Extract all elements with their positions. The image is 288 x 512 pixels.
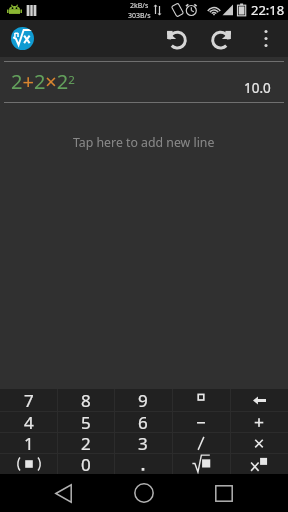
other: Decimal point xyxy=(134,455,152,473)
button[interactable]: 3 xyxy=(114,432,172,453)
other: Multiply xyxy=(250,434,268,452)
button[interactable]: Parentheses xyxy=(0,453,57,474)
button[interactable]: 0 xyxy=(57,453,114,474)
staticText: 303B/s xyxy=(128,11,151,21)
other: Power xyxy=(250,455,268,473)
button[interactable]: More options xyxy=(244,20,288,57)
button[interactable]: 7 xyxy=(0,389,57,411)
button[interactable]: Redo xyxy=(199,20,243,57)
button[interactable]: 9 xyxy=(114,389,172,411)
other: Divide xyxy=(192,434,210,452)
other: Square root xyxy=(192,454,210,473)
button[interactable]: Degree xyxy=(172,389,230,411)
button[interactable]: Calculator xyxy=(11,27,34,50)
staticText: Tap here to add new line xyxy=(73,134,215,151)
staticText: 3 xyxy=(138,432,148,453)
button[interactable]: Back xyxy=(23,474,103,512)
button[interactable]: Recent apps xyxy=(184,474,264,512)
staticText: 2+2×22 xyxy=(11,68,75,95)
staticText: 1 xyxy=(24,432,34,453)
other: Backspace xyxy=(253,395,266,406)
button[interactable]: 4 xyxy=(0,411,57,432)
button[interactable]: 8 xyxy=(57,389,114,411)
button[interactable]: Undo xyxy=(155,20,199,57)
button[interactable]: Square root xyxy=(172,453,230,474)
button[interactable]: Minus xyxy=(172,411,230,432)
staticText: 8 xyxy=(81,389,91,411)
button[interactable]: Backspace xyxy=(230,389,288,411)
staticText: 6 xyxy=(138,411,148,432)
button[interactable]: Decimal point xyxy=(114,453,172,474)
button[interactable]: Tap here to add new line xyxy=(0,103,288,181)
button[interactable]: 6 xyxy=(114,411,172,432)
button[interactable]: 2 xyxy=(57,432,114,453)
other: Minus xyxy=(192,413,210,431)
button[interactable]: Plus xyxy=(230,411,288,432)
staticText: 9 xyxy=(138,389,148,411)
staticText: 4 xyxy=(24,411,34,432)
staticText: 2 xyxy=(81,432,91,453)
staticText: 5 xyxy=(81,411,91,432)
button[interactable]: Multiply xyxy=(230,432,288,453)
button[interactable]: Home xyxy=(104,474,184,512)
button[interactable]: 2+2×22 xyxy=(0,62,288,102)
staticText: 7 xyxy=(24,389,34,411)
staticText: 2kB/s xyxy=(130,1,149,11)
button[interactable]: 1 xyxy=(0,432,57,453)
button[interactable]: 5 xyxy=(57,411,114,432)
other: Plus xyxy=(250,413,268,431)
staticText: 22:18 xyxy=(251,1,285,19)
other: Parentheses xyxy=(16,455,42,473)
button[interactable]: Power xyxy=(230,453,288,474)
staticText: 0 xyxy=(81,453,91,474)
other: Degree xyxy=(192,391,210,409)
staticText: 10.0 xyxy=(244,79,271,97)
button[interactable]: Divide xyxy=(172,432,230,453)
